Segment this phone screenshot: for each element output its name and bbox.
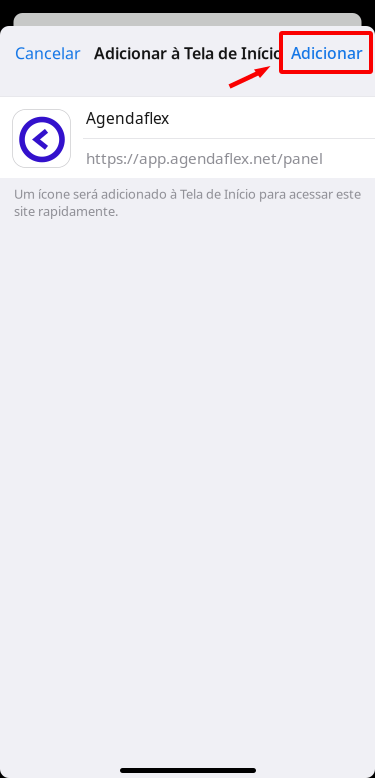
staticText: Adicionar: [291, 42, 363, 64]
staticText: Agendaflex: [86, 107, 169, 129]
staticText: https://app.agendaflex.net/panel: [86, 148, 323, 168]
button[interactable]: Cancelar: [15, 37, 85, 69]
button[interactable]: Adicionar: [291, 37, 367, 69]
staticText: Cancelar: [15, 42, 81, 64]
staticText: Adicionar à Tela de Início: [94, 42, 283, 64]
staticText: Um ícone será adicionado à Tela de Iníci…: [14, 185, 361, 220]
